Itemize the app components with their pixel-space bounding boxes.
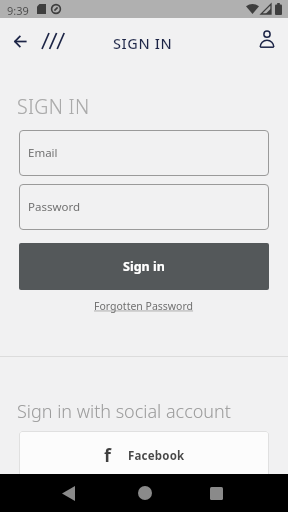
staticText: Password bbox=[28, 199, 81, 215]
staticText: SIGN IN bbox=[113, 33, 173, 53]
staticText: Sign in bbox=[123, 258, 165, 275]
staticText: 9:39 bbox=[7, 3, 29, 18]
staticText: SIGN IN bbox=[17, 93, 90, 120]
staticText: Sign in with social account bbox=[17, 399, 231, 424]
staticText: Facebook bbox=[128, 448, 185, 464]
staticText: Forgotten Password bbox=[94, 299, 194, 313]
staticText: Email bbox=[28, 145, 58, 161]
staticText: f bbox=[104, 443, 111, 468]
